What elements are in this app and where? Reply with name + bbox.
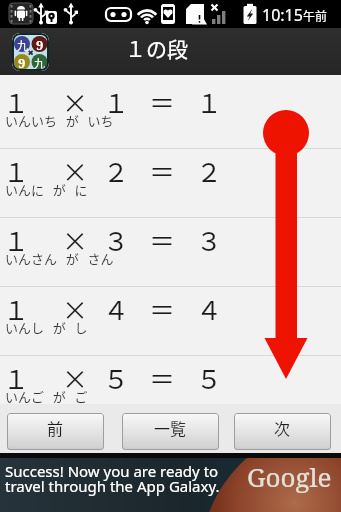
staticText: × bbox=[62, 152, 89, 190]
staticText: １ bbox=[103, 83, 130, 121]
button[interactable]: Success! Now you are ready to bbox=[0, 458, 341, 512]
staticText: 九 bbox=[34, 55, 45, 71]
staticText: １の段 bbox=[125, 33, 188, 63]
staticText: １ bbox=[3, 290, 30, 328]
staticText: Google bbox=[247, 459, 332, 494]
staticText: × bbox=[62, 83, 89, 121]
staticText: × bbox=[62, 359, 89, 397]
staticText: ４ bbox=[103, 290, 130, 328]
button[interactable]: 一覧 bbox=[122, 413, 219, 450]
staticText: 9 bbox=[18, 54, 26, 71]
staticText: 次 bbox=[274, 416, 291, 439]
staticText: ５ bbox=[103, 359, 130, 397]
staticText: ＝ bbox=[149, 359, 176, 397]
staticText: ３ bbox=[196, 221, 223, 259]
staticText: × bbox=[62, 221, 89, 259]
staticText: １ bbox=[3, 152, 30, 190]
staticText: travel through the App Galaxy. bbox=[5, 476, 220, 496]
staticText: １ bbox=[3, 83, 30, 121]
button[interactable]: 次 bbox=[234, 413, 331, 450]
staticText: ＝ bbox=[149, 152, 176, 190]
staticText: 9 bbox=[36, 36, 44, 54]
button[interactable]: 前 bbox=[7, 413, 104, 450]
staticText: ５ bbox=[196, 359, 223, 397]
staticText: ４ bbox=[196, 290, 223, 328]
staticText: 九 bbox=[17, 37, 28, 53]
staticText: 10:15午前 bbox=[262, 4, 327, 26]
staticText: いんいち が いち bbox=[5, 111, 114, 130]
staticText: × bbox=[62, 290, 89, 328]
staticText: いんさん が さん bbox=[5, 249, 114, 268]
staticText: １ bbox=[3, 221, 30, 259]
staticText: 一覧 bbox=[154, 416, 187, 439]
staticText: ＝ bbox=[149, 83, 176, 121]
staticText: Success! Now you are ready to bbox=[5, 461, 219, 481]
staticText: ２ bbox=[196, 152, 223, 190]
staticText: 前 bbox=[47, 416, 64, 439]
staticText: ＝ bbox=[149, 221, 176, 259]
staticText: ２ bbox=[103, 152, 130, 190]
staticText: ＝ bbox=[149, 290, 176, 328]
staticText: １ bbox=[3, 359, 30, 397]
staticText: いんご が ご bbox=[5, 387, 88, 406]
staticText: いんに が に bbox=[5, 180, 88, 199]
staticText: ３ bbox=[103, 221, 130, 259]
staticText: いんし が し bbox=[5, 318, 88, 337]
staticText: １ bbox=[196, 83, 223, 121]
button[interactable]: 九 bbox=[12, 33, 49, 71]
